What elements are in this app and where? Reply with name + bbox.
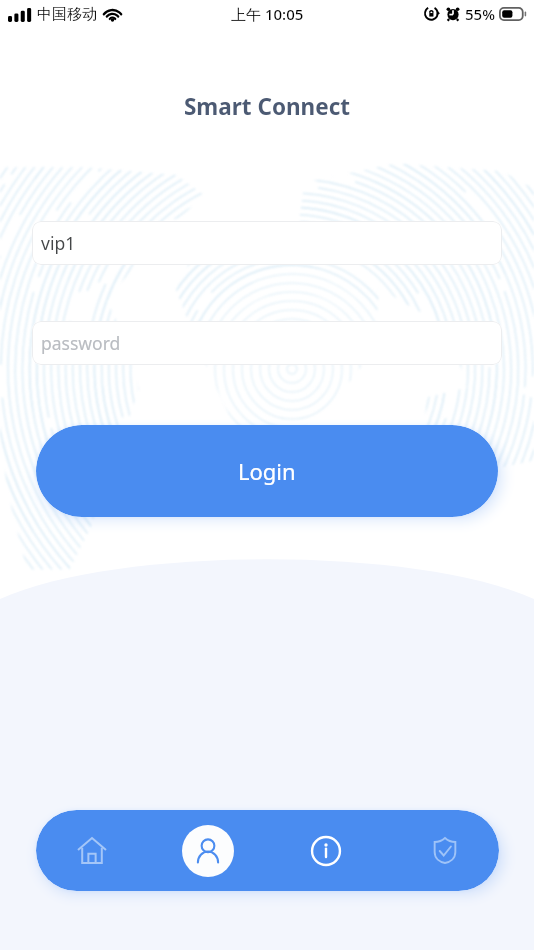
button[interactable]: Login bbox=[36, 425, 498, 517]
staticText: 55% bbox=[465, 4, 495, 24]
button[interactable]: Security bbox=[388, 810, 499, 891]
staticText: Login bbox=[238, 456, 296, 486]
button[interactable]: Profile bbox=[152, 810, 264, 891]
staticText: 上午 10:05 bbox=[231, 4, 304, 24]
button[interactable]: Info bbox=[270, 810, 382, 891]
staticText: password bbox=[41, 331, 121, 355]
button[interactable]: Home bbox=[36, 810, 148, 891]
button[interactable]: vip1 bbox=[32, 221, 502, 265]
staticText: vip1 bbox=[41, 231, 76, 255]
staticText: Smart Connect bbox=[0, 91, 534, 122]
staticText: 中国移动 bbox=[37, 5, 97, 24]
button[interactable]: password bbox=[32, 321, 502, 365]
